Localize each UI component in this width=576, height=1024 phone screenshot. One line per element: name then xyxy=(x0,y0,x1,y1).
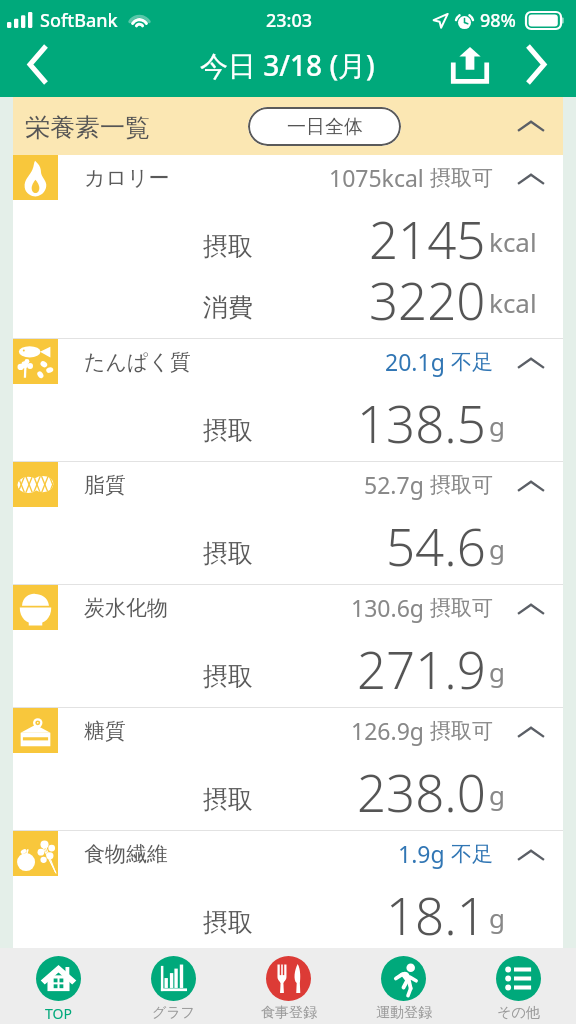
staticText: 摂取 xyxy=(203,415,253,446)
staticText: 糖質 xyxy=(84,718,126,744)
staticText: 摂取 xyxy=(203,661,253,692)
button[interactable]: 運動登録 xyxy=(346,948,461,1022)
staticText: 98% xyxy=(480,8,516,33)
staticText: 食物繊維 xyxy=(84,841,168,867)
staticText: 一日全体 xyxy=(287,115,363,139)
staticText: 摂取可 xyxy=(430,718,493,744)
staticText: 不足 xyxy=(451,841,493,867)
staticText: 130.6g xyxy=(351,592,424,623)
staticText: 18.1 xyxy=(386,880,486,941)
staticText: グラフ xyxy=(152,1004,195,1022)
staticText: 271.9 xyxy=(357,634,486,695)
button[interactable]: たんぱく質 xyxy=(13,339,563,386)
staticText: 摂取可 xyxy=(430,595,493,621)
staticText: 食事登録 xyxy=(261,1004,317,1022)
staticText: 1.9g xyxy=(398,838,445,869)
staticText: g xyxy=(489,531,505,566)
staticText: 炭水化物 xyxy=(84,595,168,621)
staticText: 摂取 xyxy=(203,907,253,938)
button[interactable]: 炭水化物 xyxy=(13,585,563,632)
button[interactable]: Next day xyxy=(508,36,564,93)
button[interactable]: 食事登録 xyxy=(231,948,346,1022)
button[interactable]: Share xyxy=(442,36,498,93)
button[interactable]: その他 xyxy=(461,948,576,1022)
button[interactable]: グラフ xyxy=(116,948,231,1022)
button[interactable]: 脂質 xyxy=(13,462,563,509)
button[interactable]: カロリー xyxy=(13,155,563,202)
staticText: 2145 xyxy=(369,204,486,265)
staticText: 摂取 xyxy=(203,538,253,569)
button[interactable]: 一日全体 xyxy=(248,107,401,146)
staticText: 摂取可 xyxy=(430,165,493,191)
staticText: 20.1g xyxy=(385,346,445,377)
staticText: g xyxy=(489,900,505,935)
button[interactable]: Collapse xyxy=(507,97,555,155)
button[interactable]: Previous day xyxy=(10,36,66,93)
button[interactable]: 糖質 xyxy=(13,708,563,755)
staticText: kcal xyxy=(489,224,537,259)
staticText: 栄養素一覧 xyxy=(25,112,150,143)
staticText: たんぱく質 xyxy=(84,349,191,375)
staticText: 摂取可 xyxy=(430,472,493,498)
staticText: 54.6 xyxy=(386,511,486,572)
staticText: 52.7g xyxy=(364,469,424,500)
staticText: TOP xyxy=(45,1004,72,1023)
button[interactable]: TOP xyxy=(0,948,116,1023)
staticText: 1075kcal xyxy=(329,162,424,193)
staticText: 3220 xyxy=(369,265,486,326)
staticText: 脂質 xyxy=(84,472,126,498)
button[interactable]: 食物繊維 xyxy=(13,831,563,878)
staticText: g xyxy=(489,408,505,443)
staticText: その他 xyxy=(497,1004,540,1022)
staticText: 138.5 xyxy=(357,388,486,449)
staticText: g xyxy=(489,777,505,812)
staticText: 不足 xyxy=(451,349,493,375)
staticText: カロリー xyxy=(84,165,170,191)
staticText: kcal xyxy=(489,285,537,320)
staticText: 今日 3/18 (月) xyxy=(200,46,375,84)
staticText: 摂取 xyxy=(203,784,253,815)
staticText: 消費 xyxy=(203,292,253,323)
staticText: g xyxy=(489,654,505,689)
staticText: 運動登録 xyxy=(376,1004,432,1022)
staticText: 126.9g xyxy=(351,715,424,746)
staticText: 238.0 xyxy=(357,757,486,818)
staticText: 23:03 xyxy=(266,8,313,33)
staticText: 摂取 xyxy=(203,231,253,262)
staticText: SoftBank xyxy=(40,8,118,33)
